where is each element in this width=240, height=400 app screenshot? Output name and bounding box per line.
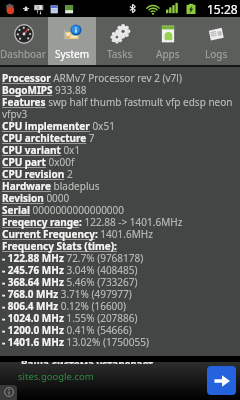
staticText: Processor ARMv7 Processor rev 2 (v7l) [2,73,182,85]
staticText: Apps [156,47,180,61]
staticText: BogoMIPS 933.88 [2,85,87,97]
staticText: Dashboard [0,47,48,61]
button[interactable]: Ad information [0,385,17,400]
staticText: - 122.88 MHz 72.7% (9768178) [2,253,144,265]
staticText: CPU architecture 7 [2,133,95,145]
staticText: CPU variant 0x1 [2,145,81,157]
button[interactable]: Tasks [96,17,144,65]
staticText: - 1401.6 MHz 13.02% (1750055) [2,337,149,349]
staticText: Current Frequency: 1401.6MHz [2,229,153,241]
staticText: - 768.0 MHz 3.71% (497977) [2,289,132,301]
staticText: Tasks [107,47,133,61]
button[interactable]: System [48,17,96,65]
staticText: CPU implementer 0x51 [2,121,115,133]
staticText: - 1200.0 MHz 0.41% (54666) [2,325,132,337]
staticText: Serial 0000000000000000 [2,205,125,217]
staticText: - 368.64 MHz 5.46% (733267) [2,277,138,289]
button[interactable]: Apps [144,17,192,65]
staticText: Ваша система устаревает [21,361,154,364]
button[interactable]: Dashboard [0,17,48,65]
staticText: 15:28 [207,1,238,17]
staticText: sites.google.com [18,370,94,383]
button[interactable]: Ваша система устаревает [0,356,240,400]
staticText: Frequency Stats (time): [2,241,117,253]
staticText: Revision 0000 [2,193,70,205]
staticText: - 806.4 MHz 0.12% (16600) [2,301,127,313]
staticText: - 1024.0 MHz 1.55% (207886) [2,313,138,325]
staticText: System [55,47,89,61]
staticText: Hardware bladeplus [2,181,100,193]
button[interactable]: Logs [192,17,240,65]
staticText: CPU revision 2 [2,169,73,181]
staticText: Logs [205,47,228,61]
staticText: Features swp half thumb fastmult vfp eds… [2,97,240,121]
staticText: Freqency range: 122.88 -> 1401.6MHz [2,217,183,229]
staticText: CPU part 0x00f [2,157,75,169]
staticText: - 245.76 MHz 3.04% (408485) [2,265,138,277]
button[interactable]: Open advertisement [207,366,236,395]
